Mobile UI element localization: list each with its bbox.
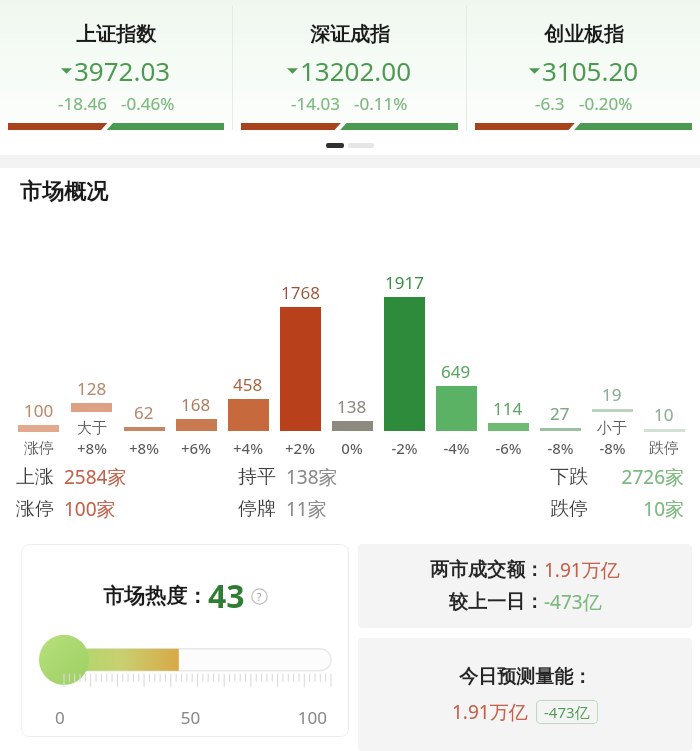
staticText: 较上一日：	[449, 590, 544, 614]
staticText: 100	[236, 706, 327, 729]
button[interactable]: 说明	[251, 588, 268, 605]
staticText: -4%	[443, 438, 470, 458]
button[interactable]: 深证成指	[233, 0, 466, 136]
staticText: +6%	[181, 438, 211, 458]
staticText: 2584家	[64, 464, 127, 490]
staticText: 停牌	[238, 497, 276, 521]
staticText: 100家	[64, 496, 116, 522]
staticText: 13202.00	[300, 53, 412, 88]
staticText: +8%	[129, 438, 159, 458]
staticText: 50	[145, 706, 236, 729]
button[interactable]: 创业板指	[467, 0, 700, 136]
staticText: 大于	[77, 419, 107, 438]
staticText: -0.11%	[354, 92, 408, 115]
staticText: 10家	[602, 496, 684, 522]
staticText: 10	[654, 403, 674, 426]
staticText: 138家	[286, 464, 338, 490]
staticText: 1917	[385, 271, 424, 294]
staticText: 涨停	[24, 439, 54, 458]
staticText: 跌停	[550, 497, 588, 521]
button[interactable]: 两市成交额：	[358, 544, 692, 628]
button[interactable]: 市场热度：	[21, 544, 349, 737]
staticText: 19	[602, 383, 622, 406]
staticText: -18.46	[58, 92, 107, 115]
staticText: 1.91万亿	[452, 699, 528, 725]
staticText: 62	[134, 401, 154, 424]
staticText: 458	[233, 373, 263, 396]
staticText: +2%	[285, 438, 315, 458]
staticText: -8%	[599, 438, 626, 458]
staticText: 涨停	[16, 497, 54, 521]
staticText: -473亿	[544, 702, 590, 722]
staticText: -2%	[391, 438, 418, 458]
staticText: 0	[55, 706, 145, 729]
staticText: 11家	[286, 496, 327, 522]
staticText: 下跌	[550, 465, 588, 489]
staticText: 上涨	[16, 465, 54, 489]
button[interactable]: 今日预测量能：	[358, 638, 692, 751]
staticText: ?	[257, 590, 262, 604]
staticText: 649	[441, 360, 471, 383]
staticText: 2726家	[602, 464, 684, 490]
staticText: 0%	[341, 438, 363, 458]
staticText: +4%	[233, 438, 263, 458]
staticText: 市场热度：	[103, 583, 208, 609]
staticText: 3105.20	[542, 53, 639, 88]
staticText: 1768	[281, 281, 320, 304]
staticText: 今日预测量能：	[459, 665, 592, 689]
staticText: 43	[208, 574, 245, 618]
staticText: 两市成交额：	[430, 558, 544, 582]
staticText: 创业板指	[544, 22, 624, 47]
staticText: 27	[550, 402, 570, 425]
button[interactable]: 上证指数	[0, 0, 232, 136]
staticText: -0.46%	[121, 92, 175, 115]
staticText: -6%	[495, 438, 522, 458]
staticText: 168	[181, 393, 211, 416]
staticText: 深证成指	[310, 22, 390, 47]
staticText: 1.91万亿	[544, 557, 620, 583]
staticText: +8%	[77, 438, 107, 458]
staticText: -0.20%	[579, 92, 633, 115]
staticText: 3972.03	[74, 53, 171, 88]
staticText: 100	[24, 399, 54, 422]
staticText: -8%	[547, 438, 574, 458]
staticText: -473亿	[544, 589, 602, 615]
staticText: 市场概况	[20, 178, 108, 206]
staticText: 持平	[238, 465, 276, 489]
staticText: 上证指数	[76, 22, 156, 47]
staticText: -6.3	[535, 92, 565, 115]
staticText: 138	[337, 395, 367, 418]
staticText: -14.03	[291, 92, 340, 115]
staticText: 128	[77, 377, 107, 400]
staticText: 小于	[597, 419, 627, 438]
staticText: 114	[493, 397, 523, 420]
staticText: 跌停	[649, 439, 679, 458]
